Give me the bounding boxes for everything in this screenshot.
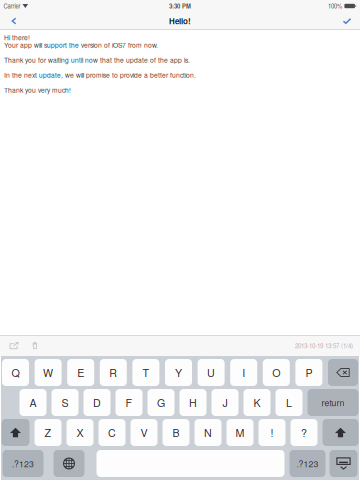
staticText: V <box>140 425 147 440</box>
button[interactable]: X <box>66 419 93 446</box>
staticText: A <box>29 395 36 410</box>
staticText: Hi there! <box>4 32 30 42</box>
button[interactable]: A <box>19 389 46 416</box>
staticText: X <box>76 425 83 440</box>
staticText: U <box>207 365 215 380</box>
button[interactable]: C <box>98 419 125 446</box>
button[interactable]: Next keyboard <box>53 450 84 477</box>
button[interactable]: I <box>230 359 257 386</box>
button[interactable]: Done <box>336 13 358 29</box>
staticText: G <box>157 395 165 410</box>
button[interactable]: D <box>83 389 110 416</box>
staticText: B <box>172 425 179 440</box>
button[interactable]: Back <box>3 13 25 29</box>
button[interactable]: Delete <box>24 335 46 356</box>
button[interactable]: R <box>100 359 127 386</box>
button[interactable]: J <box>211 389 238 416</box>
button[interactable]: U <box>198 359 225 386</box>
staticText: .?123 <box>12 457 34 470</box>
staticText: P <box>305 365 312 380</box>
staticText: I <box>242 365 245 380</box>
button[interactable]: T <box>132 359 159 386</box>
staticText: ! <box>270 425 273 440</box>
button[interactable]: L <box>275 389 302 416</box>
staticText: K <box>253 395 260 410</box>
button[interactable]: ! <box>258 419 285 446</box>
button[interactable]: G <box>147 389 174 416</box>
button[interactable]: M <box>226 419 253 446</box>
staticText: O <box>272 365 280 380</box>
button[interactable]: .?123 <box>289 450 325 477</box>
button[interactable]: E <box>67 359 94 386</box>
button[interactable]: B <box>162 419 189 446</box>
staticText: ? <box>301 425 307 440</box>
staticText: In the next update, we will promise to p… <box>4 70 196 79</box>
staticText: M <box>235 425 244 440</box>
staticText: L <box>286 395 292 410</box>
staticText: Thank you very much! <box>4 85 71 94</box>
button[interactable]: Hide keyboard <box>329 450 357 477</box>
button[interactable]: Shift <box>322 419 358 446</box>
staticText: 3:30 PM <box>169 2 191 10</box>
button[interactable]: .?123 <box>2 450 43 477</box>
staticText: F <box>125 395 132 410</box>
staticText: Z <box>44 425 51 440</box>
staticText: R <box>109 365 117 380</box>
button[interactable]: Z <box>34 419 61 446</box>
button[interactable]: H <box>179 389 206 416</box>
staticText: N <box>204 425 212 440</box>
staticText: 100% <box>328 2 342 10</box>
staticText: Hello! <box>169 15 191 27</box>
button[interactable]: K <box>243 389 270 416</box>
button[interactable]: return <box>307 389 358 416</box>
staticText: return <box>321 396 344 409</box>
staticText: J <box>222 395 227 410</box>
staticText: Thank you for waiting until now that the… <box>4 55 190 64</box>
staticText: T <box>142 365 149 380</box>
staticText: Your app will support the version of iOS… <box>4 40 158 49</box>
staticText: D <box>93 395 101 410</box>
button[interactable]: Delete <box>328 359 358 386</box>
button[interactable]: O <box>263 359 290 386</box>
staticText: .?123 <box>296 457 318 470</box>
button[interactable]: W <box>35 359 62 386</box>
button[interactable]: V <box>130 419 157 446</box>
button[interactable]: F <box>115 389 142 416</box>
button[interactable]: S <box>51 389 78 416</box>
button[interactable]: Shift <box>1 419 29 446</box>
staticText: 2013-10-19 13:57 (1/4) <box>295 341 353 350</box>
staticText: W <box>43 365 53 380</box>
button[interactable]: N <box>194 419 221 446</box>
staticText: C <box>108 425 116 440</box>
staticText: E <box>77 365 84 380</box>
button[interactable]: P <box>295 359 322 386</box>
button[interactable]: ? <box>290 419 317 446</box>
staticText: Q <box>11 365 19 380</box>
button[interactable]: Q <box>2 359 29 386</box>
staticText: Carrier <box>3 2 20 10</box>
button[interactable]: Share <box>4 335 24 356</box>
button[interactable]: Y <box>165 359 192 386</box>
staticText: H <box>189 395 197 410</box>
staticText: Y <box>175 365 182 380</box>
staticText: S <box>61 395 68 410</box>
